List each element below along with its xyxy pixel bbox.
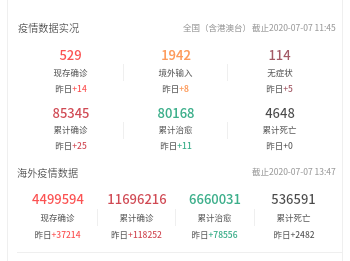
button[interactable] [8, 159, 342, 186]
staticText: 昨日+78556 [191, 228, 238, 240]
staticText: 境外输入 [158, 66, 193, 78]
button[interactable]: 529 [18, 42, 123, 97]
button[interactable]: 536591 [254, 186, 333, 243]
staticText: 全国（含港澳台） [183, 21, 252, 33]
staticText: 累计确诊 [53, 123, 88, 135]
staticText: 现存确诊 [40, 211, 75, 223]
staticText: 536591 [271, 189, 316, 208]
staticText: 4648 [265, 103, 295, 122]
staticText: 累计确诊 [119, 211, 154, 223]
staticText: 昨日+8 [162, 82, 189, 94]
staticText: 80168 [157, 103, 195, 122]
staticText: 11696216 [107, 189, 167, 208]
staticText: 昨日+37214 [34, 228, 81, 240]
staticText: 529 [59, 45, 82, 64]
staticText: 6660031 [189, 189, 241, 208]
staticText: 截止2020-07-07 11:45 [252, 21, 336, 33]
staticText: 昨日+0 [266, 139, 293, 151]
staticText: 4499594 [32, 189, 84, 208]
staticText: 累计死亡 [276, 211, 311, 223]
staticText: 海外疫情数据 [17, 165, 79, 180]
button[interactable]: 6660031 [175, 186, 254, 243]
button[interactable] [8, 14, 342, 41]
staticText: 疫情数据实况 [18, 20, 80, 35]
staticText: 昨日+118252 [111, 228, 162, 240]
staticText: 昨日+11 [160, 139, 192, 151]
button[interactable]: 4648 [227, 100, 332, 153]
staticText: 累计治愈 [158, 123, 193, 135]
button[interactable]: 114 [227, 42, 332, 97]
staticText: 昨日+14 [55, 82, 87, 94]
staticText: 截止2020-07-07 13:47 [252, 165, 336, 177]
staticText: 累计治愈 [197, 211, 232, 223]
staticText: 85345 [52, 103, 90, 122]
staticText: 114 [268, 45, 291, 64]
button[interactable]: 85345 [18, 100, 123, 153]
staticText: 累计死亡 [262, 123, 297, 135]
button[interactable]: 4499594 [18, 186, 97, 243]
staticText: 昨日+5 [266, 82, 293, 94]
button[interactable]: 11696216 [97, 186, 176, 243]
staticText: 昨日+25 [55, 139, 87, 151]
staticText: 现存确诊 [53, 66, 88, 78]
staticText: 无症状 [267, 66, 293, 78]
button[interactable]: 80168 [123, 100, 228, 153]
staticText: 昨日+2482 [273, 228, 315, 240]
staticText: 1942 [161, 45, 191, 64]
button[interactable]: 1942 [123, 42, 228, 97]
